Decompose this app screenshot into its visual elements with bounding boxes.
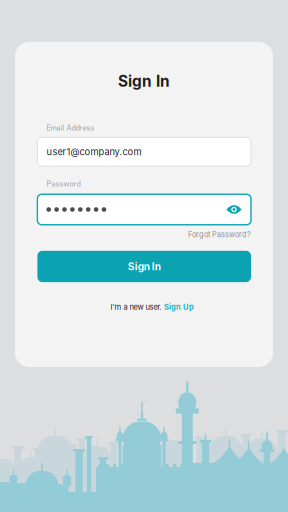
button[interactable]: Forgot Password? <box>37 230 251 239</box>
staticText: Forgot Password? <box>188 230 251 239</box>
staticText: Sign Up <box>164 302 194 311</box>
staticText: user1@company.com <box>46 146 141 157</box>
button[interactable]: Sign In <box>37 251 251 282</box>
staticText: Sign In <box>128 260 161 273</box>
staticText: Email Address <box>46 124 94 132</box>
button[interactable]: Sign Up <box>164 302 194 311</box>
staticText: Sign In <box>118 72 170 91</box>
staticText: I'm a new user. <box>110 302 161 311</box>
staticText: Password <box>46 180 80 188</box>
button[interactable]: Show password <box>220 195 248 223</box>
